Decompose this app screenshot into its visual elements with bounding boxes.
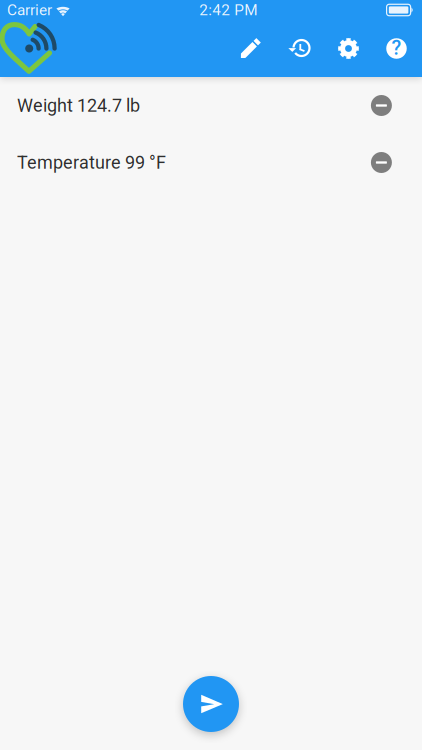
staticText: Carrier (7, 1, 52, 19)
button[interactable]: History (276, 23, 324, 73)
button[interactable]: Settings (324, 23, 373, 73)
button[interactable]: Weight 124.7 lb (0, 77, 422, 134)
button[interactable]: Temperature 99 °F (0, 134, 422, 191)
staticText: Weight 124.7 lb (17, 95, 140, 116)
button[interactable]: Edit (225, 23, 276, 73)
staticText: Temperature 99 °F (17, 152, 166, 173)
button[interactable]: Remove (359, 77, 403, 133)
button[interactable]: Remove (359, 134, 403, 190)
button[interactable]: Send (183, 676, 239, 732)
staticText: ? (391, 36, 401, 60)
button[interactable]: Help (373, 23, 420, 73)
staticText: 2:42 PM (199, 1, 257, 19)
